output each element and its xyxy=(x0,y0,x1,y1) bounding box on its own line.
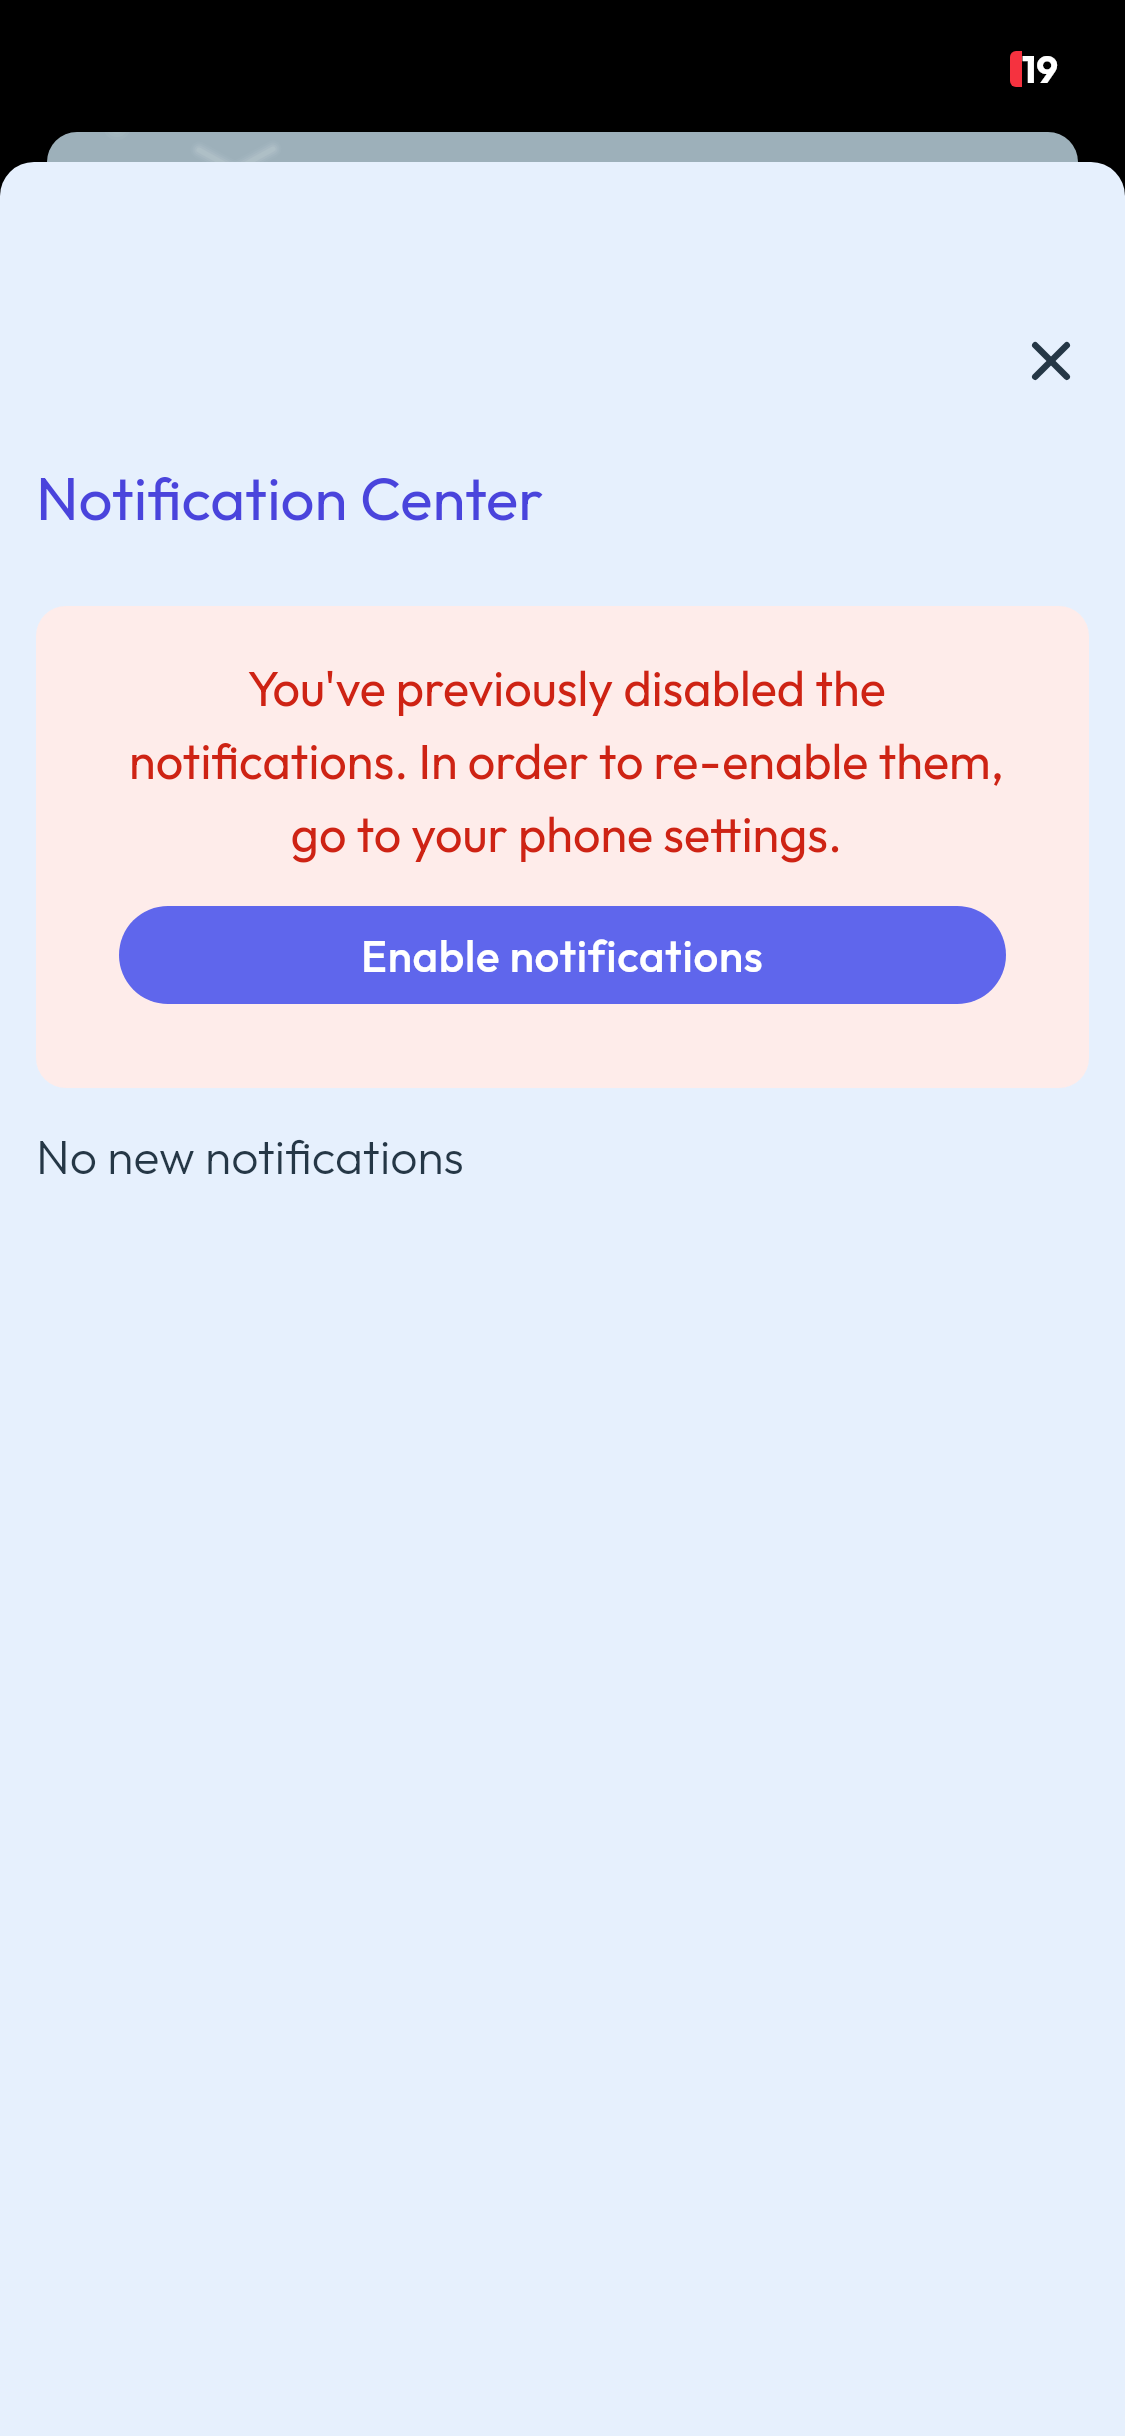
button[interactable]: Close xyxy=(1013,323,1089,399)
staticText: You've previously disabled the notificat… xyxy=(125,657,1008,865)
staticText: 19 xyxy=(1022,45,1059,93)
staticText: Enable notifications xyxy=(361,928,764,983)
staticText: Notification Center xyxy=(36,460,544,536)
staticText: No new notifications xyxy=(36,1126,464,1186)
button[interactable]: Enable notifications xyxy=(119,906,1006,1004)
